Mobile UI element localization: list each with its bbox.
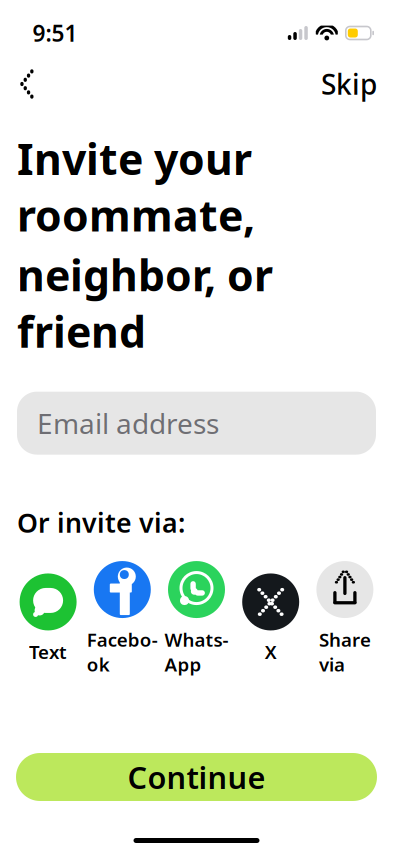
staticText: neighbor, or friend (17, 246, 273, 360)
button[interactable]: Skip (307, 62, 391, 106)
staticText: Or invite via: (17, 505, 185, 540)
staticText: Skip (321, 65, 377, 103)
button[interactable]: Text (11, 573, 85, 664)
button[interactable]: X (234, 573, 308, 664)
staticText: 9:51 (32, 18, 77, 48)
button[interactable]: Email address (17, 392, 376, 455)
button[interactable]: WhatsApp (159, 561, 234, 677)
staticText: Text (29, 639, 67, 664)
staticText: X (265, 639, 277, 664)
staticText: Invite your roommate, (17, 130, 255, 243)
button[interactable]: Share via (308, 561, 382, 677)
button[interactable]: Back (2, 62, 50, 106)
staticText: Continue (127, 757, 265, 797)
staticText: Facebook (87, 627, 158, 677)
staticText: Email address (37, 404, 219, 442)
button[interactable]: Facebook (85, 561, 159, 677)
staticText: WhatsApp (164, 627, 228, 677)
staticText: Share via (319, 627, 371, 677)
button[interactable]: Continue (16, 753, 377, 801)
